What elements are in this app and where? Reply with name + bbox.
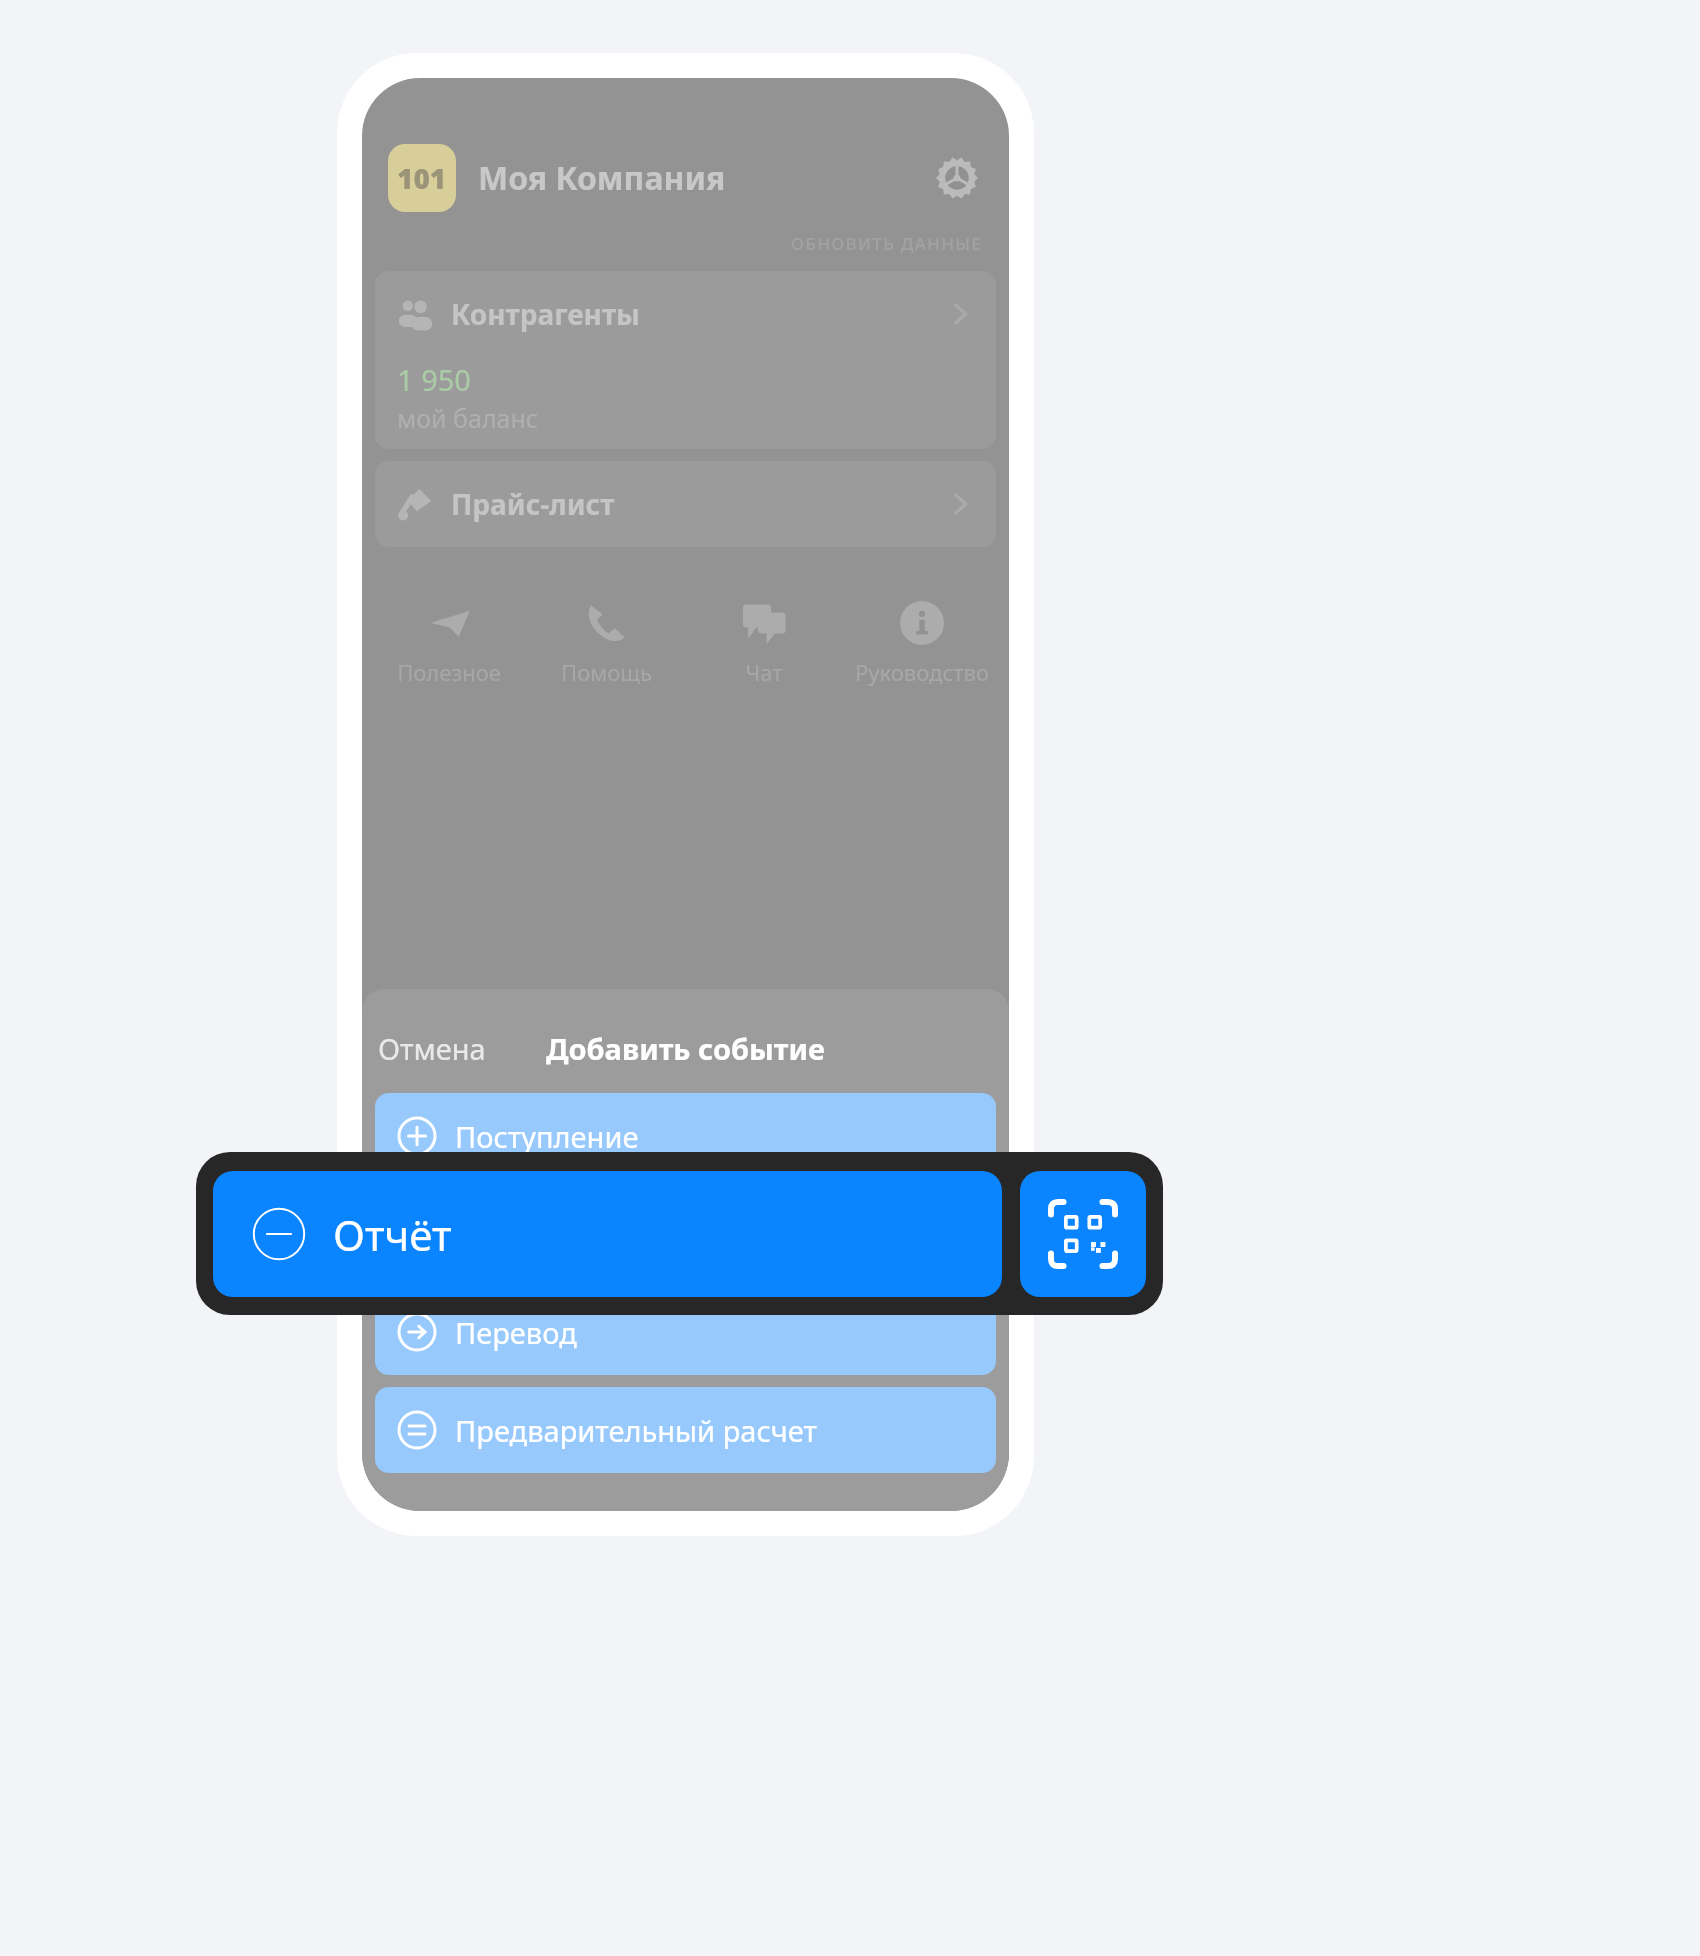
staticText: Поступление (455, 1117, 639, 1156)
staticText: 101 (397, 159, 447, 197)
staticText: Отчёт (333, 1206, 452, 1263)
button[interactable]: Предварительный расчет (375, 1387, 996, 1473)
staticText: Предварительный расчет (455, 1411, 817, 1450)
button[interactable]: Перевод (375, 1289, 996, 1375)
staticText: ОБНОВИТЬ ДАННЫЕ (791, 232, 983, 255)
button[interactable]: Помощь (527, 597, 685, 691)
button[interactable]: Отчёт (213, 1171, 1002, 1297)
button[interactable]: Контрагенты (375, 271, 996, 449)
staticText: Добавить событие (546, 1029, 825, 1068)
staticText: Полезное (397, 657, 501, 687)
staticText: Прайс-лист (451, 485, 615, 523)
staticText: 1 950 (397, 360, 471, 399)
button[interactable]: Отмена (378, 1029, 486, 1068)
staticText: Моя Компания (478, 156, 726, 200)
staticText: Контрагенты (451, 295, 641, 333)
staticText: Перевод (455, 1313, 577, 1352)
button[interactable]: Полезное (370, 597, 527, 691)
button[interactable]: Settings (931, 152, 983, 204)
button[interactable]: Чат (685, 597, 843, 691)
staticText: Помощь (561, 657, 652, 687)
button[interactable]: Руководство (843, 597, 1001, 691)
button[interactable]: Scan QR code (1020, 1171, 1146, 1297)
button[interactable]: 101 (388, 144, 456, 212)
button[interactable]: Поступление (375, 1093, 996, 1179)
staticText: Чат (745, 657, 783, 687)
staticText: Руководство (855, 657, 989, 687)
staticText: мой баланс (397, 401, 539, 435)
button[interactable]: Расход (375, 1191, 996, 1277)
button[interactable]: Прайс-лист (375, 461, 996, 547)
